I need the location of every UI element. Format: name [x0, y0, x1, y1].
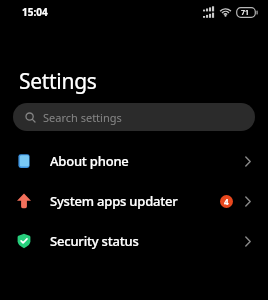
- staticText: Settings: [19, 67, 97, 96]
- button[interactable]: Search settings: [13, 103, 255, 131]
- staticText: System apps updater: [50, 192, 178, 210]
- staticText: Security status: [50, 232, 139, 250]
- staticText: 4: [224, 196, 229, 207]
- staticText: Search settings: [43, 110, 122, 125]
- button[interactable]: System apps updater: [0, 181, 268, 221]
- staticText: 15:04: [22, 5, 48, 19]
- button[interactable]: Security status: [0, 221, 268, 261]
- button[interactable]: About phone: [0, 141, 268, 181]
- staticText: 71: [241, 8, 250, 18]
- staticText: About phone: [50, 152, 129, 170]
